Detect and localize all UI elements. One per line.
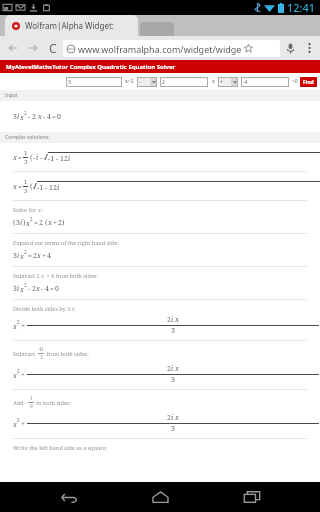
staticText: - [139, 79, 141, 86]
button[interactable]: More options [300, 39, 318, 57]
staticText: x [13, 420, 17, 430]
staticText: from both sides: [45, 350, 89, 357]
staticText: i [36, 153, 39, 163]
staticText: ( [45, 218, 48, 228]
staticText: i [68, 154, 71, 164]
staticText: x [175, 315, 179, 325]
staticText: i [72, 305, 74, 312]
staticText: 3 [171, 375, 175, 385]
staticText: - [28, 112, 31, 122]
staticText: x [26, 219, 30, 229]
staticText: i [171, 413, 174, 423]
staticText: 1 [24, 149, 28, 157]
staticText: + [21, 370, 25, 380]
staticText: i [171, 364, 174, 374]
staticText: 1 [24, 178, 28, 186]
staticText: -1 [48, 154, 55, 164]
staticText: 2 [167, 413, 171, 423]
staticText: = [18, 182, 22, 192]
staticText: 2 [17, 319, 20, 325]
staticText: i [17, 112, 20, 122]
staticText: x [20, 113, 24, 123]
button[interactable]: Wolfram|Alpha Widget: [5, 15, 138, 36]
staticText: 3 [68, 79, 71, 86]
staticText: x [38, 206, 42, 213]
staticText: = [18, 153, 22, 163]
staticText: Expand out terms of the right hand side: [13, 239, 119, 246]
staticText: - [33, 153, 36, 163]
staticText: 3 [24, 158, 28, 166]
staticText: 3 [24, 187, 28, 195]
button[interactable]: + [218, 77, 238, 87]
staticText: 4 [47, 112, 51, 122]
staticText: i [57, 183, 60, 193]
staticText: x [175, 364, 179, 374]
staticText: x [13, 371, 17, 381]
button[interactable]: 3 [66, 77, 122, 87]
staticText: C [49, 40, 57, 56]
staticText: - [28, 284, 31, 294]
button[interactable]: Reload [43, 38, 63, 58]
staticText: x [212, 78, 215, 85]
button[interactable]: Voice search [280, 38, 300, 58]
button[interactable]: Find [300, 77, 317, 87]
staticText: Subtract [13, 350, 37, 357]
button[interactable]: Recent apps [229, 482, 275, 512]
staticText: Input [5, 92, 18, 99]
staticText: - [25, 399, 27, 406]
button[interactable]: -4 [241, 77, 289, 87]
staticText: 2 [32, 284, 36, 294]
staticText: 4i [39, 346, 44, 353]
button[interactable]: www.wolframalpha.com/widget/widge [63, 40, 280, 57]
staticText: 2 [58, 218, 62, 228]
staticText: 2 [167, 364, 171, 374]
staticText: Complex solutions: [5, 134, 50, 141]
button[interactable]: Home [137, 482, 183, 512]
staticText: 2 [17, 368, 20, 374]
staticText: 0 [57, 112, 61, 122]
staticText: x [20, 285, 24, 295]
staticText: 2 [17, 417, 20, 423]
staticText: 4 [45, 284, 49, 294]
staticText: 3 [13, 112, 17, 122]
staticText: Subtract 2 [13, 272, 41, 279]
staticText: 2 [32, 112, 36, 122]
button[interactable]: Forward [23, 38, 43, 58]
staticText: x [13, 153, 17, 163]
button[interactable]: Back [3, 38, 23, 58]
staticText: 12 [60, 154, 68, 164]
staticText: -4 [243, 79, 248, 86]
staticText: x [175, 413, 179, 423]
staticText: 3 [13, 251, 17, 261]
staticText: 2 [24, 282, 27, 288]
button[interactable]: Back [46, 482, 92, 512]
staticText: 3 [40, 354, 43, 361]
staticText: x [13, 182, 17, 192]
staticText: ( [13, 218, 16, 228]
staticText: x [13, 322, 17, 332]
staticText: 3 [171, 424, 175, 434]
staticText: x [20, 252, 24, 262]
staticText: = [52, 112, 56, 122]
staticText: = [34, 218, 38, 228]
button[interactable]: - [137, 77, 157, 87]
staticText: 9 [30, 403, 33, 410]
staticText: - [40, 153, 43, 163]
staticText: x [36, 284, 40, 294]
staticText: ( [30, 182, 33, 192]
staticText: 3 [171, 326, 175, 336]
staticText: = [28, 251, 32, 261]
staticText: Divide both sides by 3 [13, 305, 72, 312]
staticText: to both sides: [35, 399, 71, 406]
staticText: 12 [49, 183, 57, 193]
staticText: + [21, 419, 25, 429]
staticText: 2 [24, 249, 27, 255]
staticText: + [53, 218, 57, 228]
button[interactable]: 2 [160, 77, 208, 87]
staticText: Wolfram|Alpha Widget: [25, 20, 114, 31]
staticText: x [37, 251, 41, 261]
staticText: 2 [30, 216, 33, 222]
staticText: ( [30, 153, 33, 163]
staticText: 4 [47, 251, 51, 261]
